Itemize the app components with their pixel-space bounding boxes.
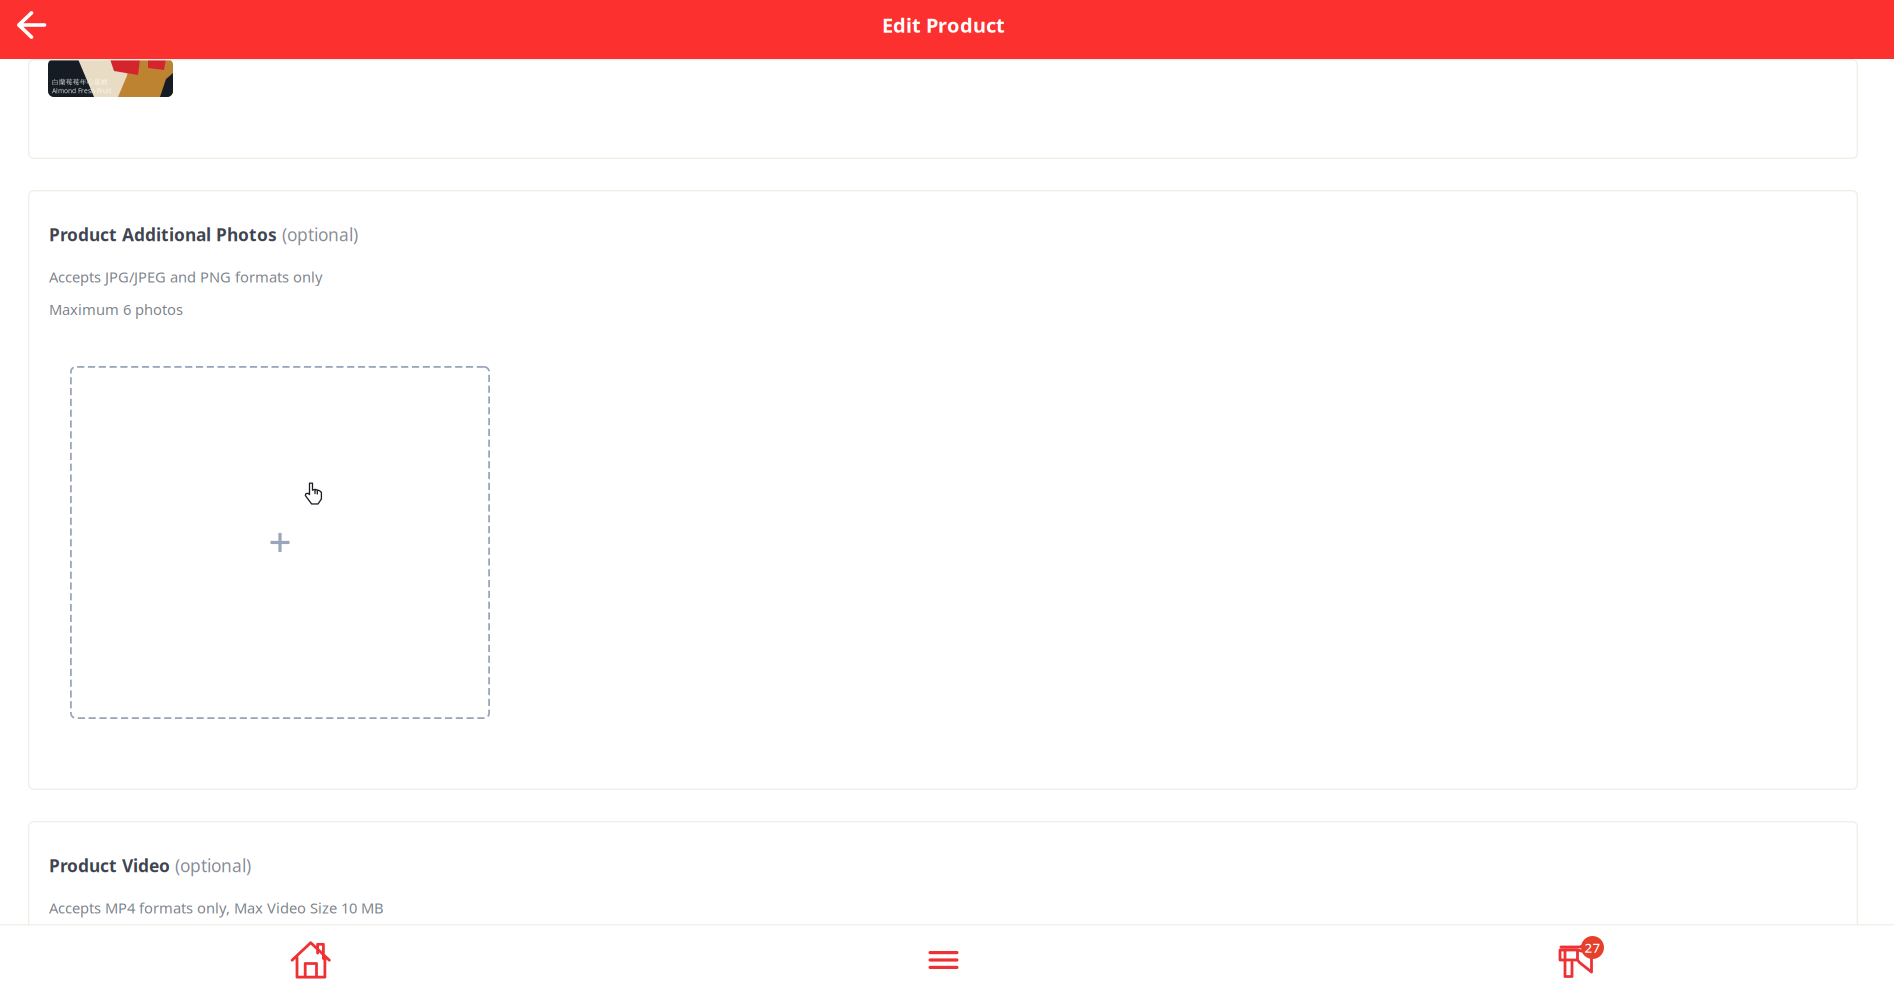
staticText: Product Video [49, 854, 170, 877]
staticText: 白蘭莓莓年心蛋糕 [52, 78, 108, 86]
staticText: Almond Fresh Fruit [52, 86, 111, 95]
staticText: Accepts JPG/JPEG and PNG formats only [49, 267, 322, 286]
button[interactable]: Home [0, 924, 631, 991]
button[interactable]: Announcements, 27 unread [1262, 924, 1894, 991]
button[interactable]: Back [0, 0, 63, 59]
staticText: (optional) [170, 854, 251, 877]
staticText: 27 [1584, 939, 1600, 956]
staticText: (optional) [277, 223, 358, 246]
staticText: Product Additional Photos [49, 223, 277, 246]
staticText: Maximum 6 photos [49, 299, 183, 319]
staticText: Edit Product [882, 12, 1005, 38]
button[interactable]: Menu [631, 924, 1262, 991]
staticText: Accepts MP4 formats only, Max Video Size… [49, 898, 384, 917]
button[interactable]: Add photo [70, 366, 490, 719]
